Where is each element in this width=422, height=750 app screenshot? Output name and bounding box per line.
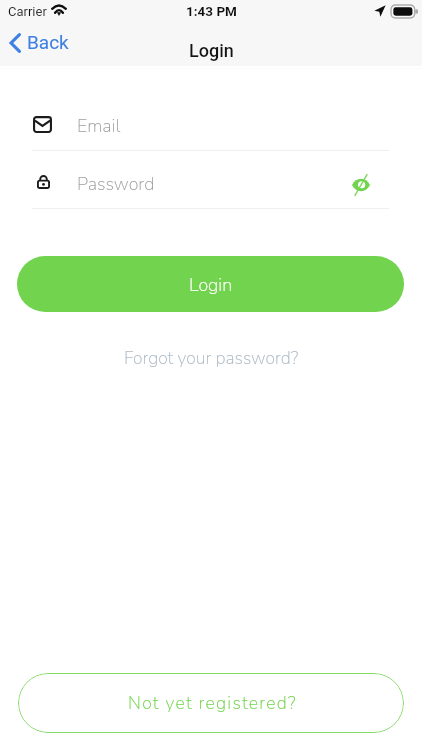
button[interactable]: Not yet registered? <box>18 673 404 733</box>
staticText: Carrier <box>8 4 47 19</box>
staticText: Login <box>189 40 234 61</box>
staticText: Password <box>77 172 155 197</box>
staticText: Forgot your password? <box>124 346 299 370</box>
staticText: Login <box>189 273 233 298</box>
button[interactable]: Login <box>17 256 404 312</box>
button[interactable]: Back <box>4 28 75 58</box>
staticText: 1:43 PM <box>186 3 237 19</box>
staticText: Not yet registered? <box>128 691 297 715</box>
staticText: Back <box>27 31 69 53</box>
button[interactable]: Forgot your password? <box>114 340 309 376</box>
button[interactable]: Show password <box>341 164 381 206</box>
staticText: Email <box>77 114 121 139</box>
